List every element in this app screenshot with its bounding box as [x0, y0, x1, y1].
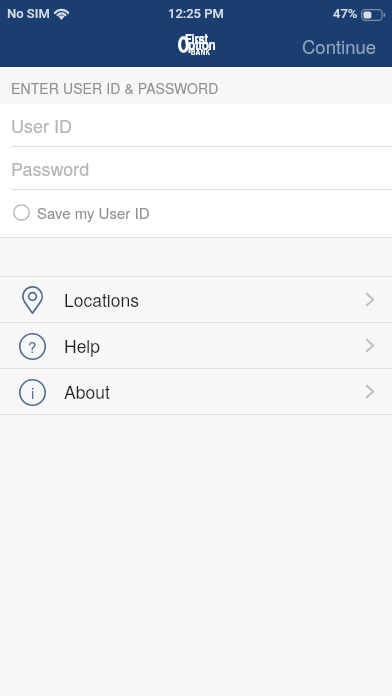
button[interactable]: Save my User ID [0, 190, 392, 237]
staticText: ption [188, 34, 216, 54]
staticText: i [31, 382, 35, 403]
staticText: About [64, 379, 110, 404]
staticText: ? [28, 336, 37, 357]
staticText: Save my User ID [37, 202, 150, 223]
button[interactable]: About [0, 369, 392, 414]
staticText: BANK [191, 47, 211, 58]
other: About [19, 379, 46, 406]
button[interactable]: Help [0, 323, 392, 368]
other: Help [19, 333, 46, 360]
staticText: Continue [302, 33, 377, 58]
button[interactable]: Password [0, 147, 392, 189]
staticText: Password [11, 155, 90, 181]
button[interactable]: User ID [0, 104, 392, 146]
button[interactable]: Locations [0, 277, 392, 322]
staticText: 47% [333, 6, 358, 21]
staticText: First [185, 29, 208, 48]
staticText: ENTER USER ID & PASSWORD [11, 78, 219, 98]
staticText: Help [64, 333, 100, 358]
button[interactable]: Continue [288, 26, 392, 67]
other: Wi-Fi [54, 8, 69, 20]
staticText: No SIM [7, 6, 50, 21]
staticText: Locations [64, 287, 139, 312]
staticText: User ID [11, 112, 73, 138]
staticText: 12:25 PM [168, 6, 224, 21]
other: Locations [22, 286, 43, 314]
